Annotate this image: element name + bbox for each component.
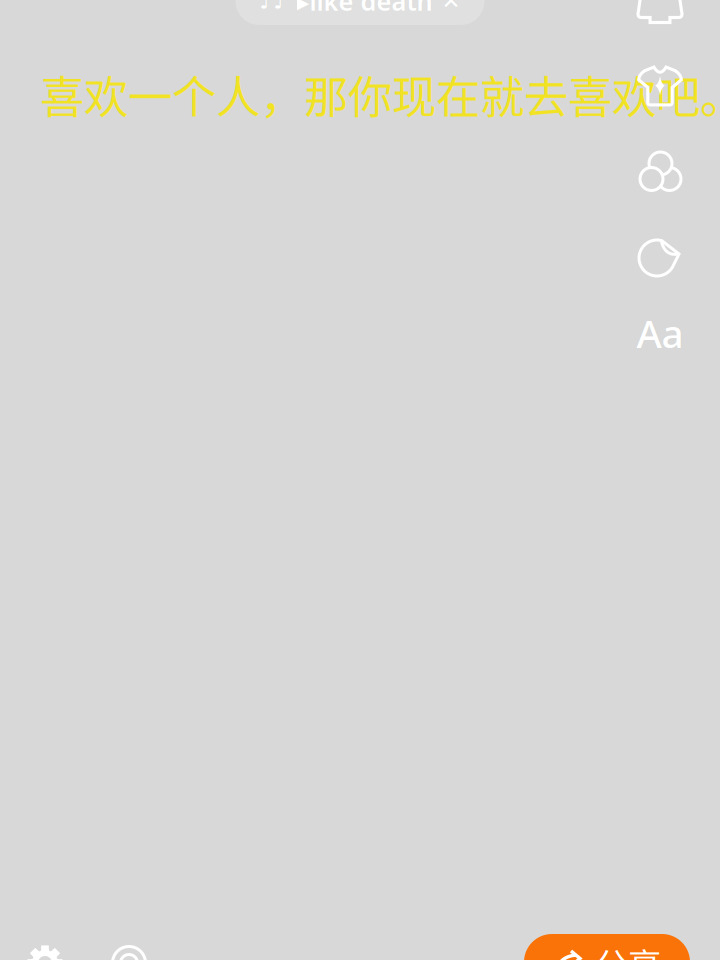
button[interactable]: Settings [25, 943, 65, 960]
staticText: 分享 [595, 939, 661, 960]
staticText: ▸like death [296, 0, 432, 18]
staticText: 喜欢一个人，那你现在就去喜欢吧。 [40, 62, 720, 126]
button[interactable]: Canvas [636, 0, 684, 30]
button[interactable]: 分享 [524, 934, 690, 960]
button[interactable]: Watermark [109, 943, 149, 960]
button[interactable]: Text style [636, 311, 684, 355]
staticText: ♪♪ [259, 0, 287, 13]
staticText: ✕ [441, 0, 460, 14]
button[interactable]: Filters [638, 150, 682, 194]
staticText: Aa [636, 307, 683, 359]
button[interactable]: Templates [636, 62, 684, 110]
button[interactable]: Stickers [638, 233, 682, 277]
